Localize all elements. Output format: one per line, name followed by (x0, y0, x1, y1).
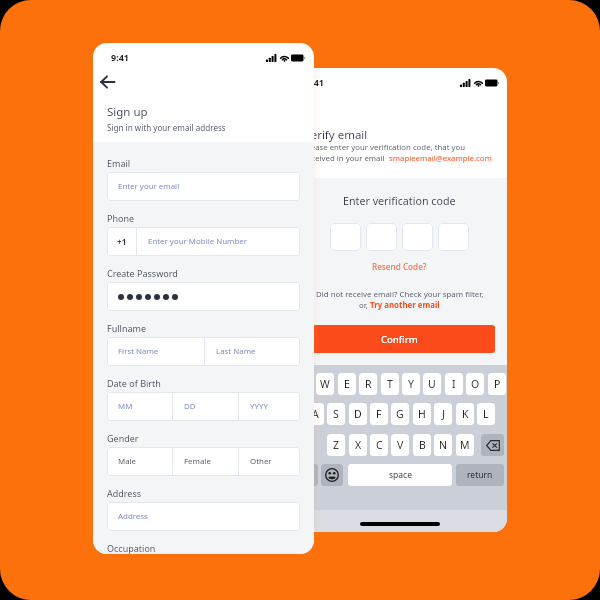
button[interactable]: Enter your Mobile Number (137, 227, 300, 256)
button[interactable]: +1 (107, 227, 136, 256)
button[interactable]: Female (173, 447, 238, 476)
button[interactable]: N (434, 434, 452, 456)
button[interactable]: Resend Code? (368, 259, 431, 274)
staticText: First Name (118, 346, 159, 357)
staticText: Male (118, 456, 137, 467)
button[interactable]: I (445, 373, 463, 395)
staticText: E (344, 377, 350, 391)
staticText: Gender (107, 432, 139, 444)
staticText: S (333, 407, 339, 421)
staticText: Address (118, 511, 148, 522)
button[interactable]: R (359, 373, 377, 395)
button[interactable]: Z (327, 434, 345, 456)
button[interactable]: Address (107, 502, 300, 531)
button[interactable]: O (466, 373, 484, 395)
button[interactable]: return (456, 464, 504, 486)
staticText: space (389, 469, 412, 481)
button[interactable] (107, 282, 300, 311)
button[interactable]: T (381, 373, 399, 395)
button[interactable]: L (477, 403, 495, 425)
staticText: G (396, 407, 404, 421)
button[interactable]: D (349, 403, 367, 425)
button[interactable]: W (316, 373, 334, 395)
staticText: D (354, 407, 362, 421)
button[interactable]: F (370, 403, 388, 425)
staticText: P (494, 377, 501, 391)
button[interactable]: K (456, 403, 474, 425)
staticText: Date of Birth (107, 377, 161, 389)
staticText: U (428, 377, 436, 391)
staticText: Resend Code? (372, 261, 427, 272)
staticText: Enter your Mobile Number (148, 236, 248, 247)
button[interactable]: U (423, 373, 441, 395)
button[interactable]: Backspace (481, 434, 504, 456)
button[interactable]: YYYY (239, 392, 300, 421)
button[interactable]: Male (107, 447, 172, 476)
staticText: Email (107, 157, 131, 169)
staticText: J (442, 407, 445, 421)
button[interactable]: H (413, 403, 431, 425)
button[interactable]: DD (173, 392, 238, 421)
button[interactable]: Try another email (370, 300, 440, 311)
button[interactable]: Last Name (205, 337, 300, 366)
staticText: K (462, 407, 469, 421)
staticText: smapleemail@example.com (389, 153, 492, 164)
button[interactable]: E (338, 373, 356, 395)
button[interactable]: J (434, 403, 452, 425)
staticText: Confirm (381, 333, 418, 346)
staticText: B (419, 438, 426, 452)
button[interactable]: M (456, 434, 474, 456)
staticText: +1 (117, 236, 127, 247)
button[interactable]: Back (93, 68, 121, 96)
staticText: Address (107, 487, 142, 499)
staticText: L (483, 407, 489, 421)
staticText: Fullname (107, 322, 146, 334)
staticText: F (376, 407, 382, 421)
staticText: Create Password (107, 267, 178, 279)
staticText: Z (333, 438, 340, 452)
staticText: Did not receive email? Check your spam f… (316, 289, 484, 300)
staticText: DD (184, 401, 196, 412)
staticText: H (418, 407, 426, 421)
staticText: V (397, 438, 404, 452)
staticText: M (460, 438, 470, 452)
staticText: return (467, 469, 493, 481)
staticText: A (312, 407, 319, 421)
staticText: W (320, 377, 330, 391)
button[interactable]: MM (107, 392, 172, 421)
staticText: X (355, 438, 362, 452)
staticText: O (471, 377, 480, 391)
button[interactable]: Y (402, 373, 420, 395)
button[interactable]: Code digit 3 (402, 223, 433, 251)
button[interactable]: Numbers (295, 464, 318, 486)
button[interactable]: Other (239, 447, 300, 476)
button[interactable]: A (306, 403, 324, 425)
staticText: Y (408, 377, 414, 391)
button[interactable]: G (391, 403, 409, 425)
button[interactable]: Code digit 2 (366, 223, 397, 251)
button[interactable]: First Name (107, 337, 204, 366)
button[interactable]: Emoji keyboard (321, 464, 343, 486)
button[interactable]: P (488, 373, 506, 395)
staticText: Please enter your verification code, tha… (304, 142, 466, 153)
button[interactable]: Enter your email (107, 172, 300, 201)
button[interactable]: C (370, 434, 388, 456)
staticText: MM (118, 401, 133, 412)
staticText: Last Name (216, 346, 256, 357)
button[interactable]: Confirm (304, 325, 495, 353)
button[interactable]: V (391, 434, 409, 456)
button[interactable]: Code digit 4 (438, 223, 469, 251)
button[interactable]: X (349, 434, 367, 456)
button[interactable]: B (413, 434, 431, 456)
staticText: Phone (107, 212, 135, 224)
button[interactable]: S (327, 403, 345, 425)
button[interactable]: Code digit 1 (330, 223, 361, 251)
staticText: Sign in with your email address (107, 122, 226, 133)
button[interactable]: space (348, 464, 452, 486)
staticText: N (439, 438, 447, 452)
staticText: Other (250, 456, 272, 467)
staticText: T (387, 377, 393, 391)
staticText: Enter verification code (343, 194, 456, 209)
